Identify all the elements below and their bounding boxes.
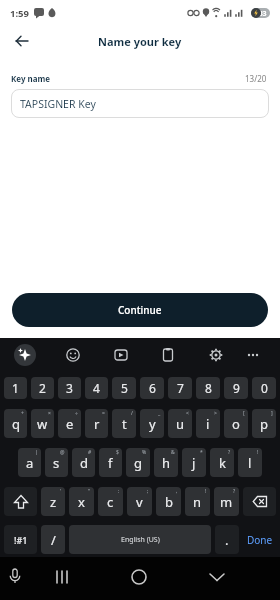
button[interactable]: 3 bbox=[58, 377, 81, 399]
staticText: c bbox=[107, 493, 114, 511]
staticText: i bbox=[206, 415, 210, 433]
staticText: g bbox=[134, 454, 142, 472]
staticText: & bbox=[171, 449, 175, 456]
button[interactable]: TAPSIGNER Key bbox=[11, 89, 269, 118]
button[interactable]: !#1 bbox=[4, 525, 37, 554]
button[interactable]: o bbox=[224, 409, 248, 438]
staticText: ? bbox=[233, 488, 236, 495]
button[interactable]: y bbox=[140, 409, 164, 438]
button[interactable]: w bbox=[31, 409, 54, 438]
staticText: . bbox=[225, 531, 229, 549]
staticText: !#1 bbox=[14, 534, 28, 546]
staticText: ÷ bbox=[75, 410, 78, 417]
staticText: _ bbox=[158, 410, 161, 417]
button[interactable]: l bbox=[238, 448, 262, 477]
button[interactable]: English (US) bbox=[69, 525, 211, 554]
button[interactable]: a bbox=[18, 448, 41, 477]
button[interactable]: 4 bbox=[85, 377, 108, 399]
button[interactable]: j bbox=[182, 448, 206, 477]
staticText: 1:59 bbox=[10, 7, 29, 20]
staticText: 33 bbox=[259, 9, 267, 18]
staticText: h bbox=[162, 454, 171, 472]
staticText: b bbox=[165, 493, 173, 511]
button[interactable]: 6 bbox=[140, 377, 164, 399]
staticText: > bbox=[214, 410, 217, 417]
staticText: f bbox=[108, 454, 113, 472]
button[interactable]: d bbox=[72, 448, 95, 477]
button[interactable]: k bbox=[210, 448, 234, 477]
button[interactable]: 8 bbox=[196, 377, 220, 399]
staticText: @ bbox=[60, 449, 65, 456]
button[interactable]: Done bbox=[243, 525, 276, 554]
staticText: / bbox=[51, 531, 56, 549]
staticText: ; bbox=[147, 488, 149, 495]
staticText: t bbox=[122, 415, 127, 433]
button[interactable]: q bbox=[4, 409, 27, 438]
staticText: s bbox=[53, 454, 60, 472]
staticText: < bbox=[186, 410, 189, 417]
staticText: ! bbox=[257, 449, 259, 456]
button[interactable]: b bbox=[156, 487, 181, 516]
button[interactable]: m bbox=[214, 487, 239, 516]
button[interactable]: z bbox=[41, 487, 65, 516]
button[interactable] bbox=[243, 487, 276, 516]
staticText: o bbox=[232, 415, 240, 433]
button[interactable]: x bbox=[69, 487, 94, 516]
button[interactable]: 1 bbox=[4, 377, 27, 399]
button[interactable]: g bbox=[126, 448, 150, 477]
button[interactable] bbox=[4, 487, 37, 516]
button[interactable] bbox=[204, 343, 228, 367]
staticText: 1 bbox=[12, 380, 19, 396]
button[interactable] bbox=[109, 343, 133, 367]
staticText: 4 bbox=[93, 380, 100, 396]
staticText: " bbox=[88, 488, 91, 495]
staticText: y bbox=[149, 415, 156, 433]
button[interactable]: 9 bbox=[224, 377, 248, 399]
button[interactable] bbox=[13, 32, 31, 50]
staticText: 8 bbox=[205, 380, 212, 396]
button[interactable]: / bbox=[41, 525, 65, 554]
staticText: 0 bbox=[261, 380, 268, 396]
staticText: v bbox=[136, 493, 143, 511]
button[interactable]: t bbox=[112, 409, 136, 438]
button[interactable]: 5 bbox=[112, 377, 136, 399]
staticText: m bbox=[220, 493, 233, 511]
button[interactable]: 7 bbox=[168, 377, 192, 399]
staticText: 13/20 bbox=[245, 73, 267, 84]
staticText: = bbox=[102, 410, 105, 417]
button[interactable]: i bbox=[196, 409, 220, 438]
button[interactable] bbox=[241, 343, 265, 367]
staticText: d bbox=[80, 454, 88, 472]
staticText: k bbox=[219, 454, 226, 472]
staticText: r bbox=[94, 415, 100, 433]
button[interactable]: Continue bbox=[12, 293, 268, 327]
button[interactable]: f bbox=[99, 448, 122, 477]
staticText: w bbox=[37, 415, 48, 433]
staticText: n bbox=[193, 493, 202, 511]
staticText: Done bbox=[247, 533, 273, 547]
staticText: TAPSIGNER Key bbox=[20, 97, 96, 111]
button[interactable]: h bbox=[154, 448, 178, 477]
button[interactable]: e bbox=[58, 409, 81, 438]
button[interactable]: 2 bbox=[31, 377, 54, 399]
button[interactable]: s bbox=[45, 448, 68, 477]
button[interactable] bbox=[61, 343, 85, 367]
staticText: $ bbox=[116, 449, 119, 456]
staticText: x bbox=[78, 493, 85, 511]
button[interactable]: v bbox=[127, 487, 152, 516]
button[interactable] bbox=[156, 343, 180, 367]
button[interactable]: u bbox=[168, 409, 192, 438]
staticText: % bbox=[142, 449, 147, 456]
button[interactable]: 0 bbox=[252, 377, 276, 399]
staticText: 5 bbox=[121, 380, 128, 396]
button[interactable]: c bbox=[98, 487, 123, 516]
button[interactable]: . bbox=[215, 525, 239, 554]
staticText: [ bbox=[243, 410, 245, 417]
staticText: * bbox=[200, 449, 203, 456]
staticText: Name your key bbox=[98, 34, 182, 49]
button[interactable]: r bbox=[85, 409, 108, 438]
button[interactable] bbox=[13, 343, 37, 367]
button[interactable]: p bbox=[252, 409, 276, 438]
staticText: ? bbox=[228, 449, 231, 456]
button[interactable]: n bbox=[185, 487, 210, 516]
